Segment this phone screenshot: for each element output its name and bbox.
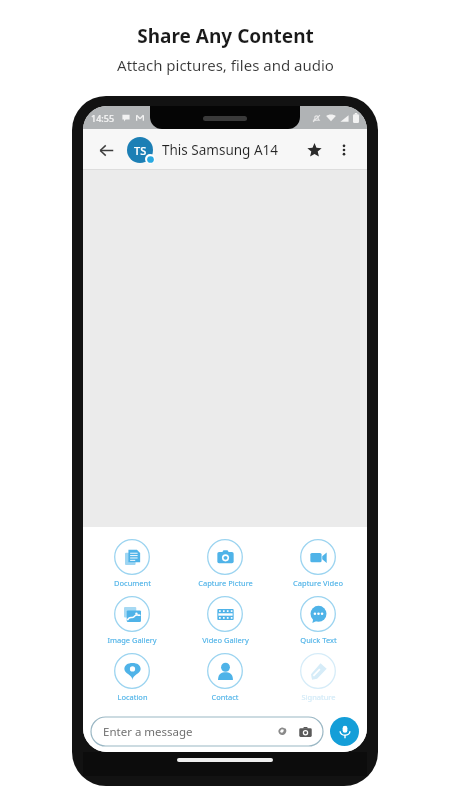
- button[interactable]: Back: [93, 137, 119, 163]
- staticText: Quick Text: [300, 635, 337, 645]
- button[interactable]: More options: [331, 137, 357, 163]
- staticText: Contact: [211, 692, 239, 702]
- staticText: Capture Picture: [198, 578, 253, 588]
- button[interactable]: Signature: [274, 649, 362, 706]
- staticText: Enter a message: [103, 724, 271, 740]
- button[interactable]: Capture Video: [274, 535, 362, 592]
- staticText: Share Any Content: [137, 23, 314, 49]
- button[interactable]: Quick Text: [274, 592, 362, 649]
- staticText: TS: [134, 143, 147, 158]
- button[interactable]: Enter a message: [91, 717, 323, 746]
- staticText: Capture Video: [293, 578, 343, 588]
- button[interactable]: Attach file: [271, 722, 291, 742]
- staticText: Location: [117, 692, 148, 702]
- staticText: Signature: [301, 692, 336, 702]
- button[interactable]: Favorite: [301, 137, 327, 163]
- staticText: Document: [114, 578, 151, 588]
- button[interactable]: Document: [88, 535, 176, 592]
- staticText: This Samsung A14: [162, 141, 301, 159]
- staticText: Image Gallery: [107, 635, 157, 645]
- button[interactable]: Image Gallery: [88, 592, 176, 649]
- staticText: Video Gallery: [202, 635, 249, 645]
- button[interactable]: Location: [88, 649, 176, 706]
- button[interactable]: TS: [127, 137, 153, 163]
- button[interactable]: Camera: [295, 722, 315, 742]
- button[interactable]: Capture Picture: [181, 535, 269, 592]
- staticText: Attach pictures, files and audio: [117, 55, 334, 75]
- button[interactable]: Video Gallery: [181, 592, 269, 649]
- button[interactable]: Contact: [181, 649, 269, 706]
- staticText: 14:55: [91, 112, 115, 124]
- button[interactable]: Record voice message: [330, 717, 359, 746]
